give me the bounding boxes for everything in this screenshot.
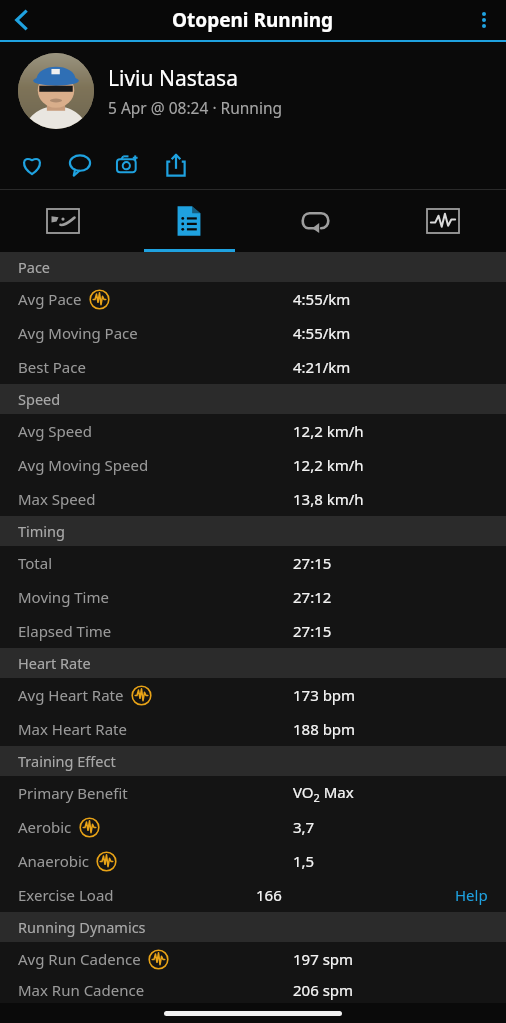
button[interactable]: Avg Speed: [0, 414, 506, 448]
staticText: 27:15: [293, 553, 332, 573]
staticText: 27:12: [293, 587, 332, 607]
button[interactable]: Moving Time: [0, 580, 506, 614]
button[interactable]: Liviu Nastasa: [0, 42, 506, 139]
staticText: Moving Time: [18, 587, 109, 607]
staticText: Best Pace: [18, 357, 86, 377]
button[interactable]: Map: [0, 190, 126, 252]
button[interactable]: Avg Moving Speed: [0, 448, 506, 482]
staticText: 166: [256, 885, 282, 905]
staticText: Avg Speed: [18, 421, 92, 441]
staticText: Avg Pace: [18, 289, 82, 309]
staticText: Total: [18, 553, 53, 573]
staticText: Elapsed Time: [18, 621, 112, 641]
staticText: Max Heart Rate: [18, 719, 127, 739]
staticText: 5 Apr @ 08:24 · Running: [108, 97, 283, 118]
staticText: Primary Benefit: [18, 783, 128, 803]
staticText: 4:21/km: [293, 357, 351, 377]
button[interactable]: Back: [0, 0, 44, 40]
staticText: Avg Run Cadence: [18, 949, 141, 969]
staticText: 13,8 km/h: [293, 489, 364, 509]
staticText: 4:55/km: [293, 289, 351, 309]
button[interactable]: Laps: [252, 190, 379, 252]
button[interactable]: Anaerobic: [0, 844, 506, 878]
staticText: Max Speed: [18, 489, 96, 509]
staticText: Training Effect: [18, 751, 116, 771]
staticText: Max Run Cadence: [18, 980, 145, 1000]
staticText: Speed: [18, 389, 61, 409]
staticText: Avg Heart Rate: [18, 685, 124, 705]
button[interactable]: Max Run Cadence: [0, 976, 506, 1003]
button[interactable]: Add photo: [106, 143, 150, 187]
staticText: 197 spm: [293, 949, 354, 969]
staticText: 4:55/km: [293, 323, 351, 343]
staticText: 206 spm: [293, 980, 354, 1000]
staticText: Help: [455, 885, 488, 905]
staticText: Pace: [18, 257, 51, 277]
button[interactable]: Avg Pace: [0, 282, 506, 316]
button[interactable]: Aerobic: [0, 810, 506, 844]
staticText: 12,2 km/h: [293, 421, 364, 441]
button[interactable]: Exercise Load: [0, 878, 506, 912]
button[interactable]: Help: [451, 885, 492, 905]
staticText: 1,5: [293, 851, 315, 871]
staticText: Running Dynamics: [18, 917, 146, 937]
button[interactable]: Comment: [58, 143, 102, 187]
staticText: Avg Moving Pace: [18, 323, 138, 343]
staticText: VO2 Max: [293, 782, 354, 805]
staticText: Aerobic: [18, 817, 72, 837]
staticText: 3,7: [293, 817, 315, 837]
button[interactable]: Share: [154, 143, 198, 187]
button[interactable]: More options: [462, 0, 506, 40]
button[interactable]: Total: [0, 546, 506, 580]
staticText: Liviu Nastasa: [108, 64, 238, 93]
staticText: 188 bpm: [293, 719, 356, 739]
staticText: 173 bpm: [293, 685, 356, 705]
button[interactable]: Primary Benefit: [0, 776, 506, 810]
button[interactable]: Avg Heart Rate: [0, 678, 506, 712]
staticText: 27:15: [293, 621, 332, 641]
staticText: 12,2 km/h: [293, 455, 364, 475]
button[interactable]: Max Heart Rate: [0, 712, 506, 746]
button[interactable]: Avg Run Cadence: [0, 942, 506, 976]
button[interactable]: Max Speed: [0, 482, 506, 516]
button[interactable]: Charts: [379, 190, 506, 252]
button[interactable]: Elapsed Time: [0, 614, 506, 648]
button[interactable]: Best Pace: [0, 350, 506, 384]
staticText: Heart Rate: [18, 653, 91, 673]
button[interactable]: Avg Moving Pace: [0, 316, 506, 350]
staticText: Anaerobic: [18, 851, 89, 871]
staticText: Avg Moving Speed: [18, 455, 149, 475]
button[interactable]: Details: [126, 190, 252, 252]
staticText: Timing: [18, 521, 65, 541]
button[interactable]: Like: [10, 143, 54, 187]
staticText: Otopeni Running: [172, 7, 334, 33]
staticText: Exercise Load: [18, 885, 114, 905]
